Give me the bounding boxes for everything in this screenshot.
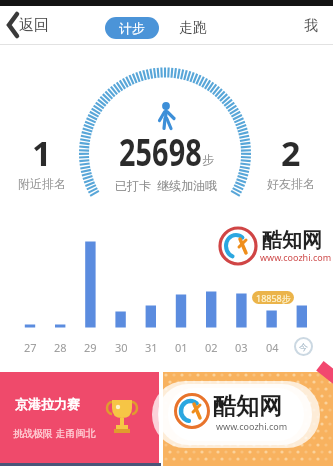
staticText: 28 (54, 340, 67, 355)
staticText: 走跑 (179, 19, 207, 37)
staticText: 返回 (19, 16, 49, 35)
button[interactable]: 返回 (6, 10, 56, 40)
staticText: www.coozhi.com (260, 251, 332, 263)
staticText: 计步 (119, 20, 145, 36)
staticText: 04 (266, 340, 279, 355)
staticText: 我 (304, 17, 318, 35)
button[interactable]: 今 (294, 337, 313, 356)
staticText: 酷知网 (262, 228, 322, 253)
staticText: 京港拉力赛 (15, 396, 80, 412)
staticText: 01 (175, 340, 188, 355)
staticText: 酷知网 (213, 392, 282, 421)
staticText: 好友排名 (267, 176, 315, 191)
staticText: 1 (32, 130, 52, 176)
staticText: 附近排名 (18, 176, 66, 191)
button[interactable]: 京港拉力赛 (0, 372, 159, 466)
staticText: 2 (281, 130, 301, 176)
staticText: 03 (235, 340, 248, 355)
button[interactable]: 我 (298, 14, 324, 38)
staticText: 挑战极限 走甬闽北 (13, 426, 96, 440)
staticText: 25698 (119, 125, 202, 177)
staticText: 02 (205, 340, 218, 355)
button[interactable]: 计步 (105, 17, 159, 39)
staticText: 29 (84, 340, 97, 355)
staticText: 31 (145, 340, 158, 355)
staticText: 30 (115, 340, 128, 355)
staticText: 步 (202, 152, 214, 167)
button[interactable]: 酷知网 (163, 372, 333, 466)
staticText: 27 (24, 340, 37, 355)
staticText: www.coozhi.com (216, 420, 288, 432)
staticText: 今 (299, 341, 308, 352)
staticText: 18858步 (256, 292, 291, 304)
button[interactable]: 走跑 (172, 17, 214, 39)
staticText: 已打卡 继续加油哦 (115, 177, 218, 193)
